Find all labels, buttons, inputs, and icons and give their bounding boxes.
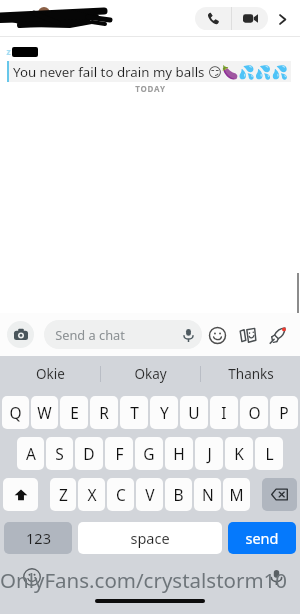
- staticText: Okie: [36, 365, 65, 383]
- staticText: You never fail to drain my balls 😏🍆💦💦💦: [13, 63, 288, 81]
- button[interactable]: I: [210, 396, 238, 429]
- staticText: I: [221, 402, 227, 423]
- staticText: P: [279, 402, 289, 423]
- button[interactable]: B: [165, 478, 192, 511]
- staticText: z: [6, 46, 11, 58]
- button[interactable]: U: [180, 396, 208, 429]
- staticText: M: [229, 484, 244, 505]
- staticText: H: [173, 443, 185, 464]
- button[interactable]: K: [225, 437, 253, 470]
- button[interactable]: G: [135, 437, 163, 470]
- staticText: X: [87, 484, 97, 505]
- button[interactable]: T: [120, 396, 148, 429]
- button[interactable]: P: [270, 396, 298, 429]
- staticText: D: [83, 443, 95, 464]
- button[interactable]: space: [78, 522, 222, 554]
- staticText: Okay: [134, 365, 167, 383]
- staticText: Send a chat: [55, 326, 125, 343]
- button[interactable]: W: [31, 396, 58, 429]
- button[interactable]: S: [46, 437, 73, 470]
- staticText: C: [116, 484, 126, 505]
- button[interactable]: A: [17, 437, 44, 470]
- button[interactable]: F: [105, 437, 133, 470]
- staticText: TODAY: [135, 83, 166, 94]
- staticText: E: [70, 402, 79, 423]
- staticText: F: [115, 443, 124, 464]
- staticText: U: [188, 402, 200, 423]
- button[interactable]: Z: [50, 478, 76, 511]
- button[interactable]: More options: [272, 9, 292, 29]
- staticText: space: [130, 528, 170, 548]
- button[interactable]: Voice input: [266, 567, 286, 587]
- button[interactable]: Y: [150, 396, 178, 429]
- staticText: Z: [59, 484, 68, 505]
- staticText: Thanks: [228, 365, 274, 383]
- button[interactable]: Q: [2, 396, 29, 429]
- button[interactable]: Stickers: [234, 322, 260, 348]
- button[interactable]: Emoji keyboard: [22, 567, 42, 587]
- button[interactable]: O: [240, 396, 268, 429]
- button[interactable]: V: [136, 478, 163, 511]
- button[interactable]: Shift: [3, 478, 38, 511]
- button[interactable]: Backspace: [262, 478, 297, 511]
- button[interactable]: Audio call: [195, 7, 231, 30]
- staticText: 123: [26, 528, 51, 548]
- staticText: S: [55, 443, 64, 464]
- button[interactable]: Voice message: [177, 324, 199, 346]
- staticText: O: [248, 402, 261, 423]
- button[interactable]: J: [195, 437, 223, 470]
- button[interactable]: X: [78, 478, 105, 511]
- staticText: L: [265, 443, 274, 464]
- button[interactable]: send: [228, 522, 296, 554]
- button[interactable]: M: [223, 478, 250, 511]
- button[interactable]: E: [60, 396, 88, 429]
- button[interactable]: Send a chat: [44, 320, 202, 349]
- staticText: A: [26, 443, 36, 464]
- button[interactable]: 123: [4, 522, 72, 554]
- staticText: V: [145, 484, 155, 505]
- button[interactable]: Camera: [7, 321, 34, 348]
- button[interactable]: H: [165, 437, 193, 470]
- staticText: N: [202, 484, 214, 505]
- staticText: OnlyFans.com/crystalstorm10: [0, 566, 300, 594]
- button[interactable]: Okay: [101, 356, 200, 392]
- button[interactable]: L: [255, 437, 283, 470]
- staticText: J: [207, 443, 212, 464]
- staticText: T: [130, 402, 139, 423]
- staticText: R: [99, 402, 109, 423]
- button[interactable]: Games: [264, 322, 290, 348]
- staticText: G: [143, 443, 155, 464]
- staticText: send: [245, 528, 279, 548]
- button[interactable]: D: [75, 437, 103, 470]
- button[interactable]: Thanks: [201, 356, 300, 392]
- button[interactable]: Emoji: [204, 322, 230, 348]
- button[interactable]: N: [194, 478, 221, 511]
- staticText: Y: [160, 402, 169, 423]
- staticText: W: [37, 402, 52, 423]
- button[interactable]: R: [90, 396, 118, 429]
- button[interactable]: C: [107, 478, 134, 511]
- button[interactable]: Video call: [232, 7, 268, 30]
- button[interactable]: Okie: [0, 356, 100, 392]
- staticText: B: [173, 484, 184, 505]
- staticText: Q: [9, 402, 22, 423]
- staticText: K: [234, 443, 244, 464]
